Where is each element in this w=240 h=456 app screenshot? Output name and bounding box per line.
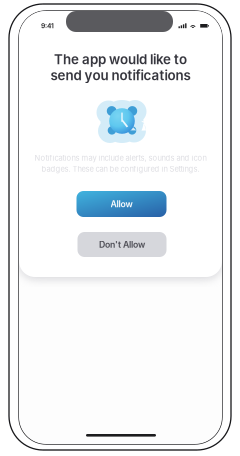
staticText: 9:41 [41, 22, 54, 30]
button[interactable]: Don't Allow [77, 232, 166, 257]
button[interactable]: Allow [76, 191, 166, 217]
staticText: Allow [110, 199, 132, 209]
staticText: badges. These can be configured in Setti… [41, 164, 199, 174]
staticText: The app would like to [54, 51, 187, 67]
staticText: Don't Allow [99, 239, 145, 250]
staticText: Notifications may include alerts, sounds… [34, 153, 206, 163]
staticText: send you notifications [50, 67, 190, 83]
